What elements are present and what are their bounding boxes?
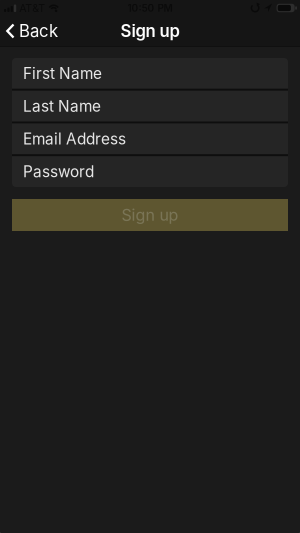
staticText: Sign up — [121, 205, 178, 225]
button[interactable]: Sign up — [12, 199, 288, 231]
staticText: Sign up — [120, 21, 179, 41]
button[interactable]: Last Name — [12, 91, 288, 122]
staticText: AT&T — [19, 1, 45, 14]
button[interactable]: First Name — [12, 58, 288, 89]
button[interactable]: Back — [0, 16, 58, 46]
button[interactable]: Email Address — [12, 123, 288, 154]
staticText: 10:50 PM — [127, 2, 172, 14]
staticText: Back — [19, 21, 58, 41]
staticText: Password — [23, 162, 94, 181]
button[interactable]: Password — [12, 156, 288, 187]
staticText: Email Address — [23, 130, 126, 148]
staticText: First Name — [23, 64, 102, 83]
staticText: Last Name — [23, 97, 101, 115]
